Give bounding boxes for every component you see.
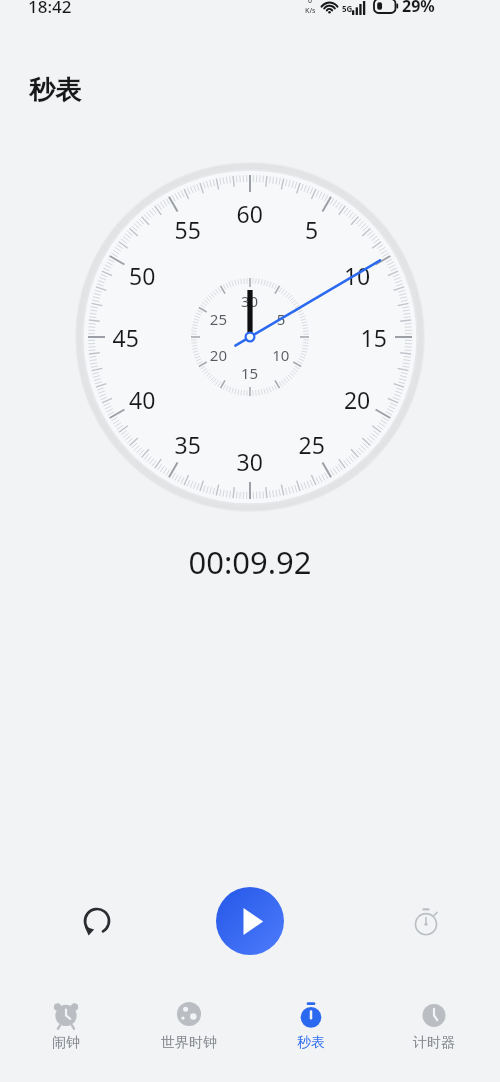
button[interactable]: 计时器 [378, 993, 490, 1077]
staticText: 世界时钟 [161, 1034, 217, 1052]
button[interactable]: 秒表 [255, 993, 367, 1077]
staticText: 5G [342, 3, 353, 14]
button[interactable]: Reset [71, 895, 123, 947]
staticText: 闹钟 [52, 1034, 80, 1052]
button[interactable]: Lap [400, 895, 452, 947]
staticText: 00:09.92 [0, 541, 500, 583]
staticText: 29% [402, 0, 435, 17]
button[interactable]: Start [216, 887, 284, 955]
button[interactable]: 世界时钟 [133, 993, 245, 1077]
staticText: 0 [308, 0, 313, 6]
button[interactable]: 闹钟 [10, 993, 122, 1077]
staticText: 秒表 [29, 74, 81, 107]
staticText: 18:42 [28, 0, 72, 18]
staticText: K/s [305, 6, 316, 16]
staticText: 计时器 [413, 1034, 455, 1052]
staticText: 秒表 [297, 1034, 325, 1052]
